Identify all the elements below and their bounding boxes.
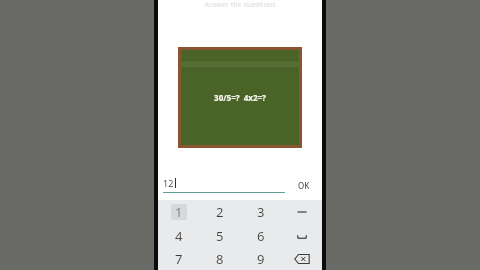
- button[interactable]: 3: [240, 200, 281, 224]
- staticText: 9: [257, 250, 265, 268]
- button[interactable]: 7: [158, 247, 199, 270]
- button[interactable]: 2: [199, 200, 240, 224]
- staticText: OK: [298, 180, 310, 191]
- staticText: Answer the questions: [204, 0, 276, 7]
- button[interactable]: 1: [158, 200, 199, 224]
- button[interactable]: 8: [199, 247, 240, 270]
- staticText: 5: [216, 227, 224, 245]
- button[interactable]: Space: [281, 224, 322, 247]
- button[interactable]: OK: [291, 170, 317, 200]
- button[interactable]: 5: [199, 224, 240, 247]
- staticText: 7: [175, 250, 183, 268]
- staticText: 30/5=? 4x2=?: [214, 92, 266, 103]
- staticText: 12: [163, 177, 174, 189]
- button[interactable]: Backspace: [281, 247, 322, 270]
- button[interactable]: 6: [240, 224, 281, 247]
- button[interactable]: 9: [240, 247, 281, 270]
- button[interactable]: 12: [163, 170, 285, 200]
- staticText: 6: [257, 227, 265, 245]
- staticText: 2: [216, 203, 224, 221]
- button[interactable]: 4: [158, 224, 199, 247]
- button[interactable]: Minus: [281, 200, 322, 224]
- staticText: 3: [257, 203, 265, 221]
- staticText: 4: [175, 227, 183, 245]
- staticText: 8: [216, 250, 224, 268]
- staticText: 1: [175, 203, 183, 221]
